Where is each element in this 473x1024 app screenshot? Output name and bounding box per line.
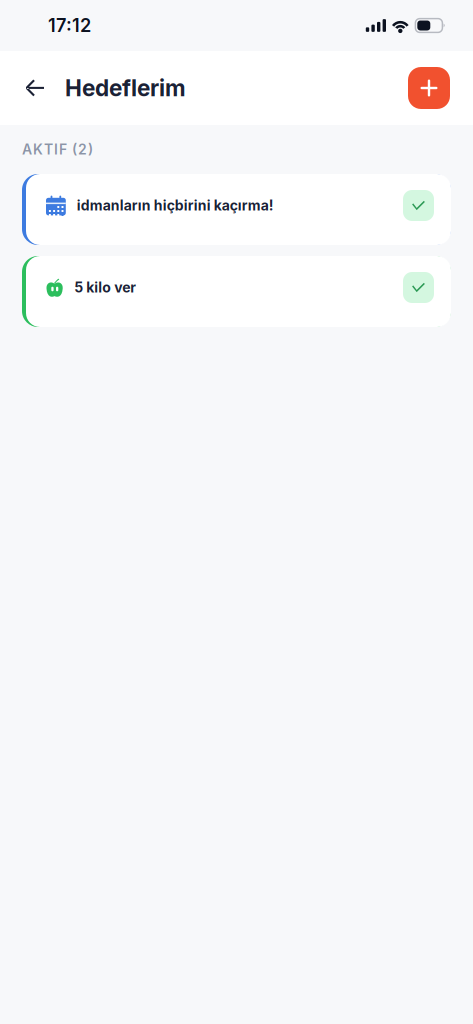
button[interactable]: Back [25, 66, 53, 110]
button[interactable]: Add goal [408, 67, 450, 109]
staticText: idmanların hiçbirini kaçırma! [77, 197, 274, 214]
staticText: A K T I F ( 2 ) [22, 141, 93, 158]
button[interactable]: 5 kilo ver [22, 256, 451, 327]
staticText: 5 kilo ver [74, 279, 136, 296]
button[interactable]: idmanların hiçbirini kaçırma! [22, 174, 451, 245]
staticText: Hedeflerim [65, 74, 186, 102]
staticText: 17:12 [48, 14, 91, 36]
